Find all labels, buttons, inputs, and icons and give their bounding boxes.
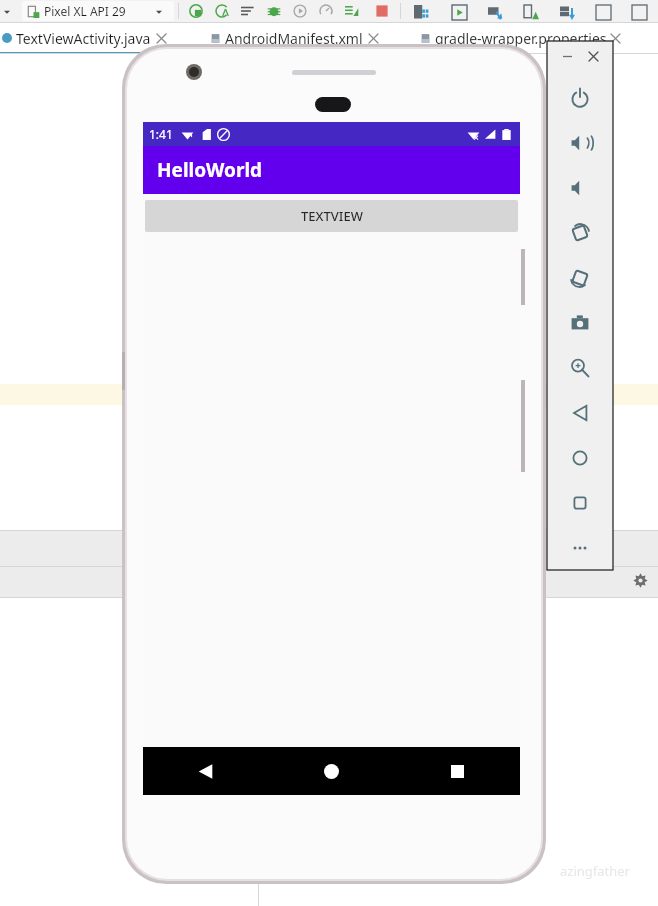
button[interactable]: Back — [563, 396, 597, 430]
button[interactable]: Toolbar action 4 — [264, 1, 284, 21]
button[interactable]: Settings — [626, 566, 654, 594]
staticText: azingfather — [560, 862, 630, 880]
button[interactable]: Power — [563, 81, 597, 115]
staticText: gradle-wrapper.properties — [435, 29, 607, 48]
button[interactable]: Toolbar icon 5 — [556, 1, 578, 23]
staticText: https://blog.c... — [400, 862, 493, 880]
staticText: HelloWorld — [157, 157, 263, 183]
button[interactable]: Back — [143, 747, 268, 795]
button[interactable]: Toolbar icon 7 — [628, 1, 650, 23]
button[interactable]: Rotate left — [563, 216, 597, 250]
button[interactable]: AndroidManifest.xml — [210, 23, 378, 53]
button[interactable]: Volume down — [563, 171, 597, 205]
button[interactable]: Toolbar action 1 — [186, 1, 206, 21]
button[interactable]: Toolbar action 7 — [342, 1, 362, 21]
button[interactable]: Close — [585, 48, 601, 64]
button[interactable]: Home — [268, 747, 394, 795]
button[interactable]: Minimize — [559, 48, 575, 64]
button[interactable]: Toolbar icon 6 — [592, 1, 614, 23]
staticText: AndroidManifest.xml — [225, 29, 363, 48]
staticText: 1:41 — [149, 126, 173, 142]
button[interactable]: Rotate right — [563, 261, 597, 295]
button[interactable]: Toolbar action 3 — [238, 1, 258, 21]
button[interactable]: Toolbar action 5 — [290, 1, 310, 21]
button[interactable]: Pixel XL API 29 — [22, 1, 174, 21]
button[interactable]: Toolbar action 2 — [212, 1, 232, 21]
button[interactable]: Home — [563, 441, 597, 475]
button[interactable]: Toolbar action 6 — [316, 1, 336, 21]
button[interactable]: gradle-wrapper.properties — [420, 23, 620, 53]
button[interactable]: Screenshot — [563, 306, 597, 340]
button[interactable]: Toolbar icon 2 — [448, 1, 470, 23]
button[interactable]: Toolbar icon 1 — [410, 1, 432, 23]
button[interactable]: Toolbar action 8 — [372, 1, 392, 21]
button[interactable]: More — [563, 531, 597, 565]
button[interactable]: TEXTVIEW — [145, 200, 518, 232]
staticText: Pixel XL API 29 — [44, 3, 126, 19]
button[interactable]: Recents — [394, 747, 520, 795]
staticText: Gradle build finished in 1 m 15 s 33 ms — [278, 864, 496, 880]
staticText: TextViewActivity.java — [16, 29, 151, 48]
button[interactable]: TextViewActivity.java — [2, 23, 166, 53]
button[interactable]: Volume up — [563, 126, 597, 160]
button[interactable]: Toolbar icon 3 — [484, 1, 506, 23]
button[interactable]: Overview — [563, 486, 597, 520]
button[interactable]: Zoom — [563, 351, 597, 385]
button[interactable]: Toolbar icon 4 — [520, 1, 542, 23]
staticText: TEXTVIEW — [301, 207, 363, 225]
